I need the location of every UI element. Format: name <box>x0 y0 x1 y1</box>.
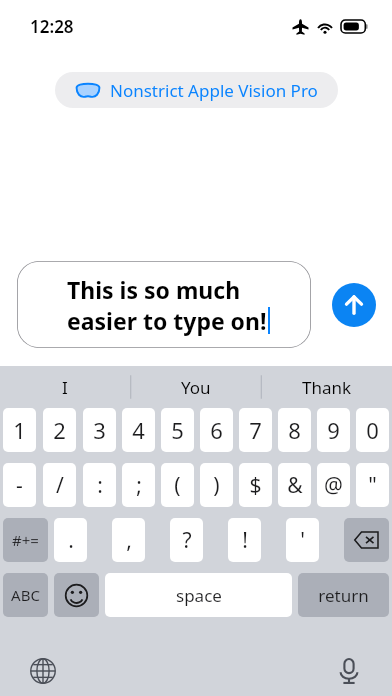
button[interactable]: Dictate <box>332 654 366 688</box>
staticText: 2 <box>53 415 66 445</box>
staticText: 9 <box>327 415 340 445</box>
button[interactable]: : <box>83 463 116 507</box>
button[interactable]: Send <box>332 283 376 327</box>
button[interactable]: " <box>356 463 389 507</box>
button[interactable]: ) <box>200 463 233 507</box>
staticText: easier to type on! <box>67 305 267 336</box>
staticText: I <box>62 376 68 399</box>
button[interactable]: Nonstrict Apple Vision Pro <box>55 72 338 108</box>
staticText: Thank <box>302 376 352 399</box>
button[interactable]: . <box>54 518 87 562</box>
button[interactable]: I <box>0 366 130 408</box>
staticText: #+= <box>12 530 39 550</box>
button[interactable]: @ <box>317 463 350 507</box>
staticText: 5 <box>171 415 184 445</box>
staticText: / <box>56 471 64 500</box>
staticText: ( <box>174 471 181 500</box>
staticText: You <box>181 376 211 399</box>
button[interactable]: 1 <box>3 408 36 452</box>
staticText: & <box>287 471 303 500</box>
staticText: space <box>176 584 222 607</box>
staticText: @ <box>324 471 343 500</box>
staticText: ABC <box>11 585 40 605</box>
staticText: ! <box>242 526 248 555</box>
button[interactable]: This is so much <box>17 261 311 348</box>
staticText: return <box>318 584 369 607</box>
button[interactable]: #+= <box>3 518 48 562</box>
staticText: Nonstrict Apple Vision Pro <box>110 79 318 102</box>
button[interactable]: $ <box>239 463 272 507</box>
staticText: - <box>16 471 23 500</box>
button[interactable]: 8 <box>278 408 311 452</box>
staticText: . <box>68 526 74 555</box>
staticText: " <box>368 471 377 500</box>
staticText: ' <box>300 526 305 555</box>
button[interactable]: & <box>278 463 311 507</box>
button[interactable]: 4 <box>122 408 155 452</box>
button[interactable]: ( <box>161 463 194 507</box>
staticText: ) <box>213 471 220 500</box>
staticText: $ <box>249 471 262 500</box>
button[interactable]: 7 <box>239 408 272 452</box>
button[interactable]: ABC <box>3 573 48 617</box>
staticText: ; <box>136 471 142 500</box>
button[interactable]: 6 <box>200 408 233 452</box>
staticText: 6 <box>210 415 223 445</box>
staticText: 3 <box>93 415 106 445</box>
button[interactable]: ! <box>228 518 261 562</box>
staticText: 12:28 <box>30 15 74 38</box>
button[interactable]: Emoji <box>54 573 99 617</box>
button[interactable]: You <box>130 366 261 408</box>
button[interactable]: Backspace <box>344 518 389 562</box>
button[interactable]: / <box>43 463 76 507</box>
staticText: : <box>97 471 103 500</box>
staticText: , <box>126 526 132 555</box>
staticText: ? <box>182 526 192 555</box>
staticText: 8 <box>288 415 301 445</box>
staticText: 4 <box>132 415 145 445</box>
button[interactable]: 0 <box>356 408 389 452</box>
button[interactable]: Switch keyboard language <box>26 654 60 688</box>
button[interactable]: , <box>112 518 145 562</box>
staticText: 7 <box>249 415 262 445</box>
staticText: 1 <box>13 415 26 445</box>
staticText: 0 <box>366 415 379 445</box>
button[interactable]: ; <box>122 463 155 507</box>
button[interactable]: 5 <box>161 408 194 452</box>
button[interactable]: return <box>298 573 389 617</box>
button[interactable]: 3 <box>83 408 116 452</box>
staticText: This is so much <box>67 274 241 305</box>
button[interactable]: Thank <box>261 366 392 408</box>
button[interactable]: ? <box>170 518 203 562</box>
button[interactable]: 9 <box>317 408 350 452</box>
button[interactable]: space <box>105 573 292 617</box>
button[interactable]: - <box>3 463 36 507</box>
button[interactable]: ' <box>286 518 319 562</box>
button[interactable]: 2 <box>43 408 76 452</box>
